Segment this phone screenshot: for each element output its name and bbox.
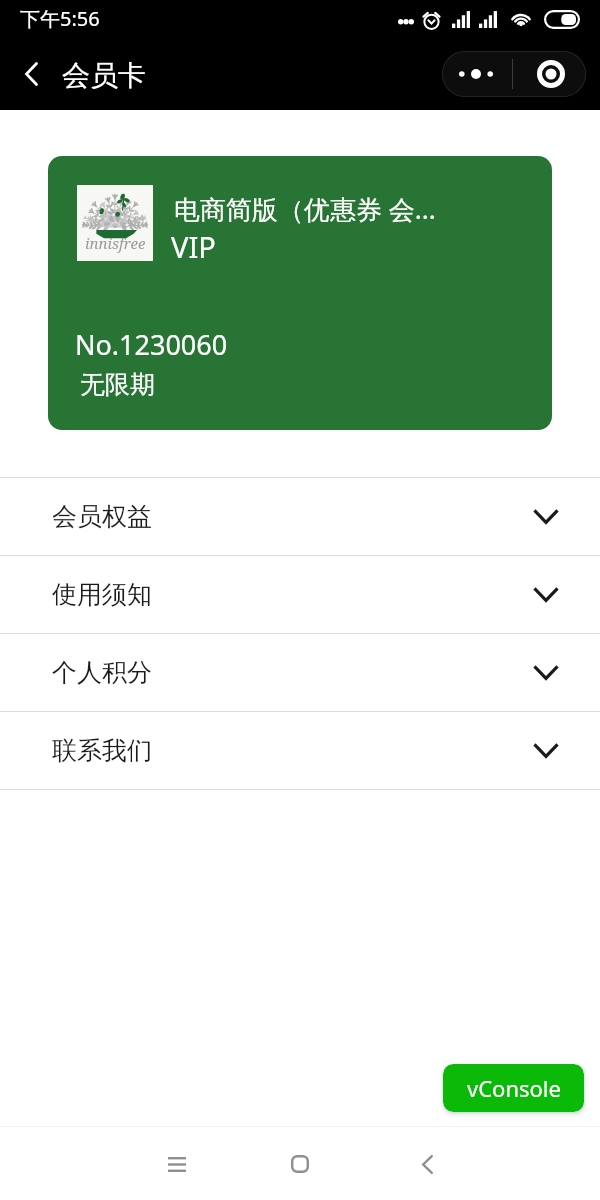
staticText: 会员卡 (62, 58, 146, 93)
staticText: 下午5:56 (20, 5, 100, 32)
button[interactable]: Back (10, 52, 54, 96)
button[interactable]: vConsole (443, 1064, 584, 1112)
staticText: 使用须知 (52, 579, 152, 610)
button[interactable]: Close mini program (516, 51, 586, 97)
staticText: 无限期 (80, 369, 155, 400)
button[interactable]: 使用须知 (0, 556, 600, 633)
staticText: 会员权益 (52, 501, 152, 532)
button[interactable]: Back (387, 1128, 459, 1200)
staticText: 个人积分 (52, 657, 152, 688)
button[interactable]: 会员权益 (0, 478, 600, 555)
staticText: No.1230060 (75, 326, 228, 363)
button[interactable]: 个人积分 (0, 634, 600, 711)
button[interactable]: innisfree (48, 156, 552, 430)
button[interactable]: More (442, 51, 510, 97)
button[interactable]: Home (264, 1128, 336, 1200)
staticText: vConsole (467, 1073, 561, 1103)
staticText: innisfree (85, 233, 146, 253)
button[interactable]: Recent apps (141, 1128, 213, 1200)
staticText: 联系我们 (52, 735, 152, 766)
button[interactable]: 联系我们 (0, 712, 600, 789)
staticText: VIP (171, 227, 216, 266)
staticText: 电商简版（优惠券 会... (174, 191, 436, 227)
